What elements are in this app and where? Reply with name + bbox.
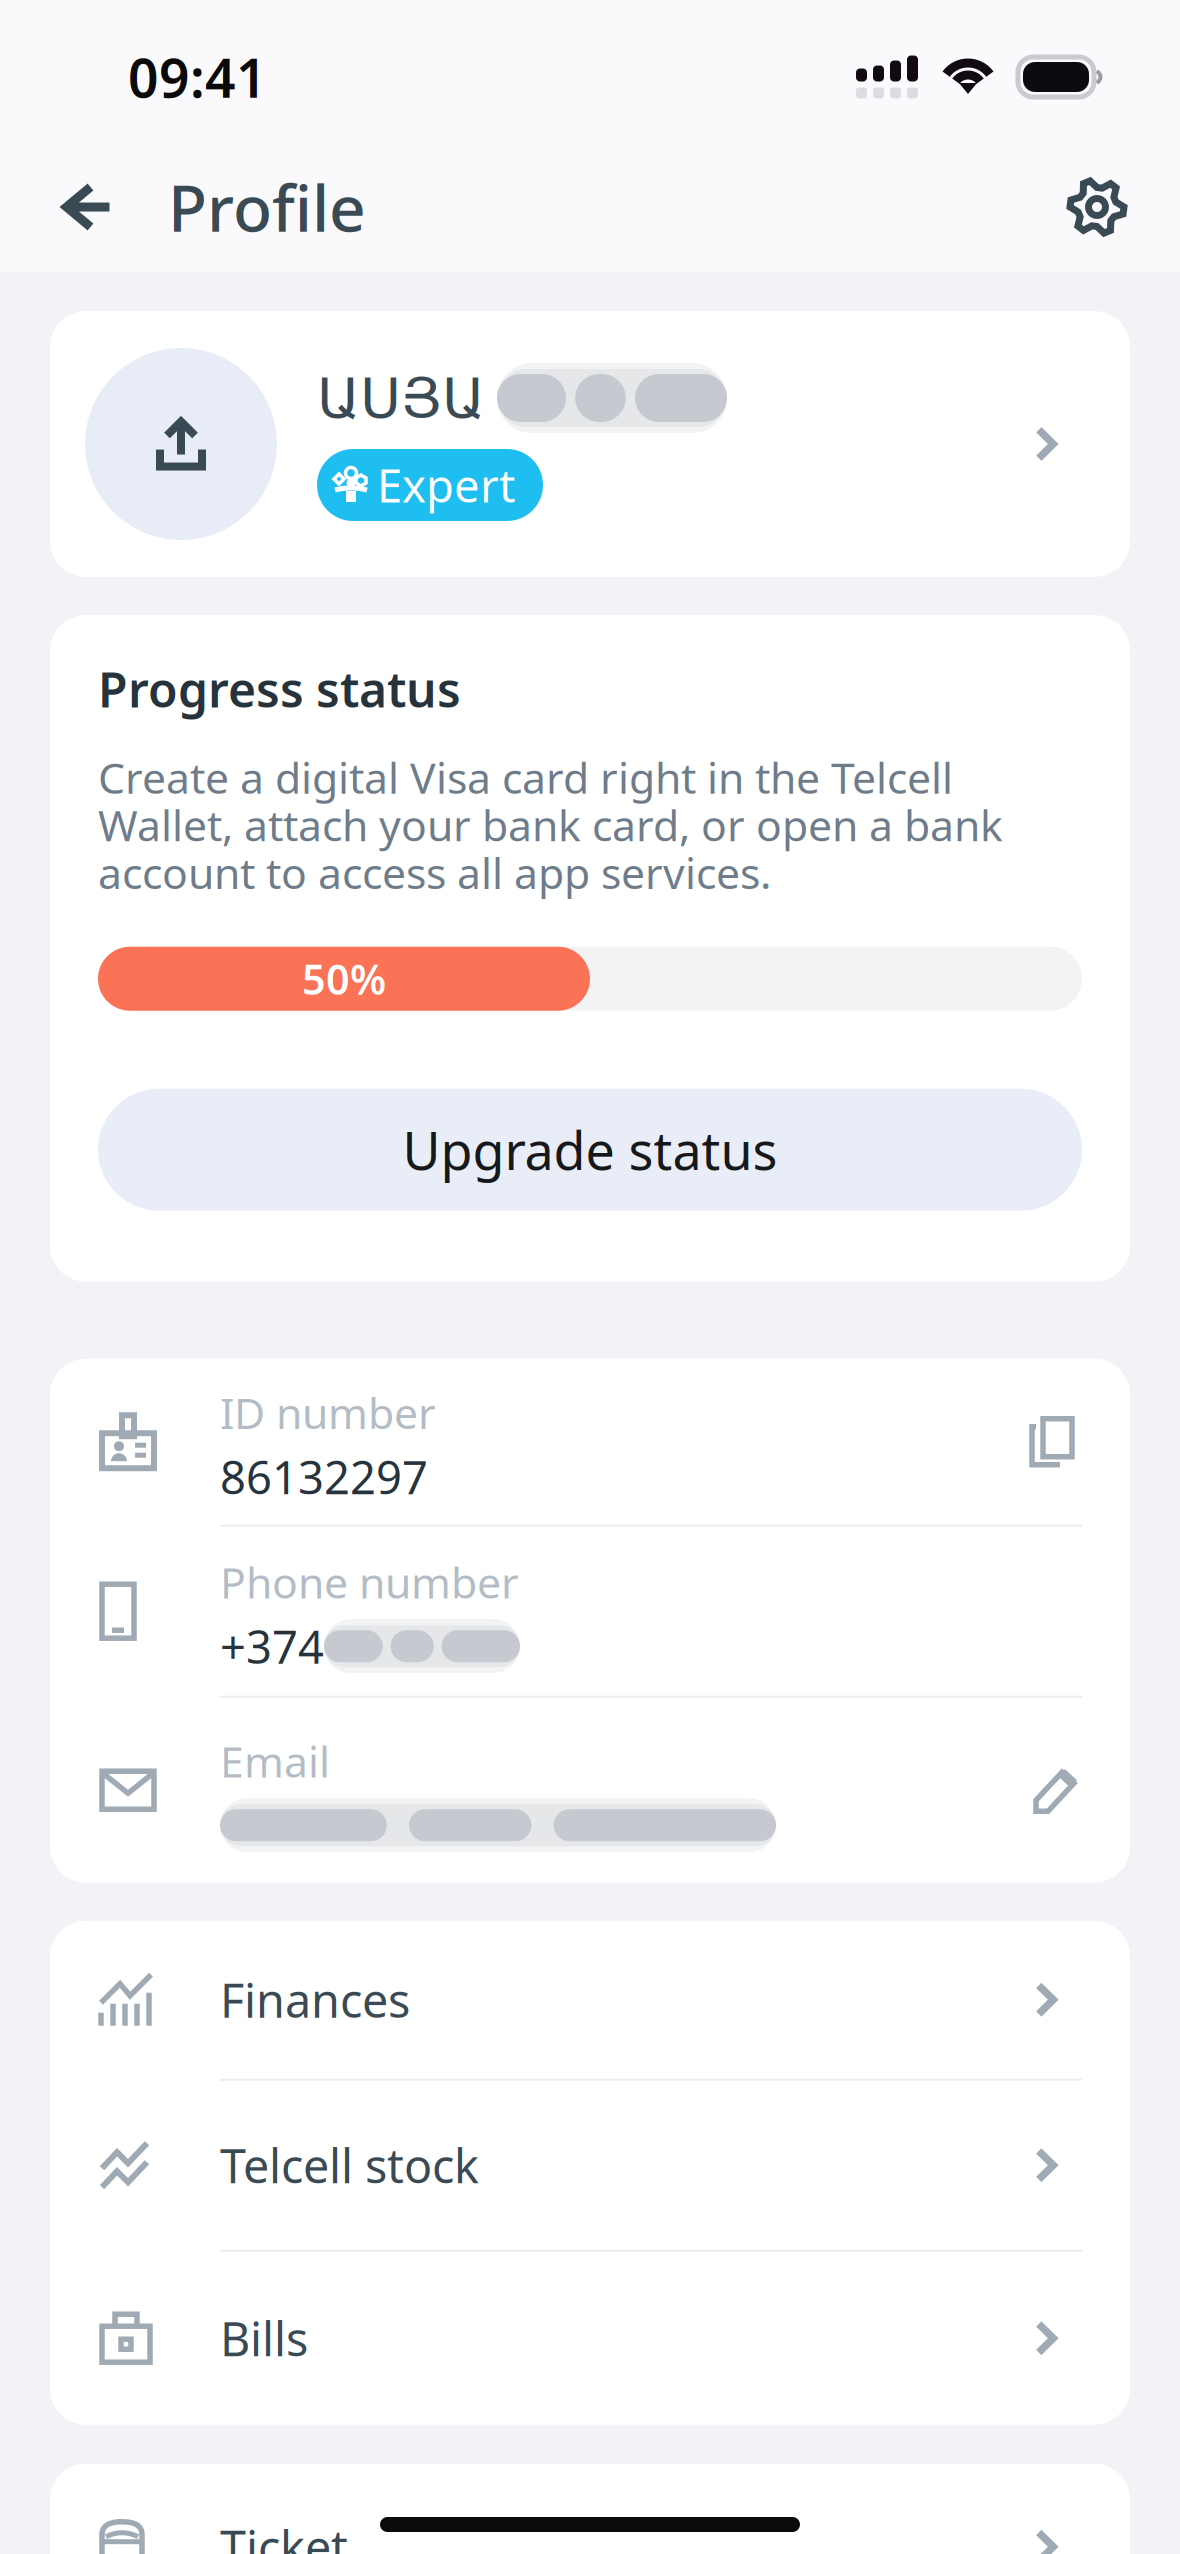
staticText: ԱՍՅԱ [317, 366, 485, 430]
button[interactable]: Edit email [1026, 1750, 1080, 1830]
staticText: Telcell stock [220, 2134, 479, 2196]
button[interactable]: ԱՍՅԱ [50, 311, 1130, 577]
staticText: Progress status [98, 657, 461, 721]
staticText: Expert [377, 455, 515, 515]
staticText: 09:41 [128, 42, 267, 112]
staticText: ID number [220, 1384, 436, 1441]
button[interactable]: Finances [98, 1921, 1082, 2079]
button[interactable]: Telcell stock [98, 2081, 1082, 2250]
staticText: Finances [220, 1969, 410, 2031]
button[interactable]: Back [31, 151, 145, 263]
button[interactable]: Ticket [98, 2464, 1082, 2554]
staticText: 86132297 [220, 1447, 428, 1507]
staticText: Upgrade status [402, 1115, 777, 1184]
staticText: Email [220, 1733, 330, 1789]
staticText: Phone number [220, 1554, 519, 1610]
button[interactable]: Settings [1045, 151, 1149, 263]
button[interactable]: Upgrade status [98, 1089, 1082, 1211]
staticText: +374 [220, 1616, 324, 1676]
staticText: Profile [168, 164, 366, 249]
staticText: Create a digital Visa card right in the … [98, 749, 1003, 901]
staticText: 50% [302, 951, 386, 1006]
staticText: Bills [220, 2307, 308, 2369]
button[interactable]: Bills [98, 2252, 1082, 2425]
staticText: Ticket [220, 2516, 348, 2554]
button[interactable]: Copy ID number [1026, 1402, 1076, 1482]
